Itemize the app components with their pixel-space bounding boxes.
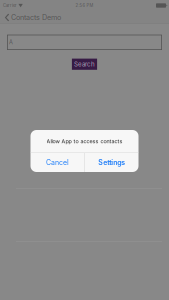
staticText: Allow App to access contacts <box>46 138 122 144</box>
button[interactable]: Cancel <box>30 153 84 172</box>
button[interactable]: Contacts Demo <box>0 11 66 24</box>
staticText: 2:56 PM <box>75 3 93 8</box>
staticText: A <box>9 39 13 46</box>
staticText: Carrier <box>3 3 17 8</box>
staticText: Search <box>74 60 95 68</box>
button[interactable]: Search <box>72 59 97 70</box>
staticText: Contacts Demo <box>11 13 61 22</box>
button[interactable]: Settings <box>85 153 139 172</box>
staticText: Cancel <box>46 158 69 167</box>
staticText: Settings <box>98 158 125 167</box>
